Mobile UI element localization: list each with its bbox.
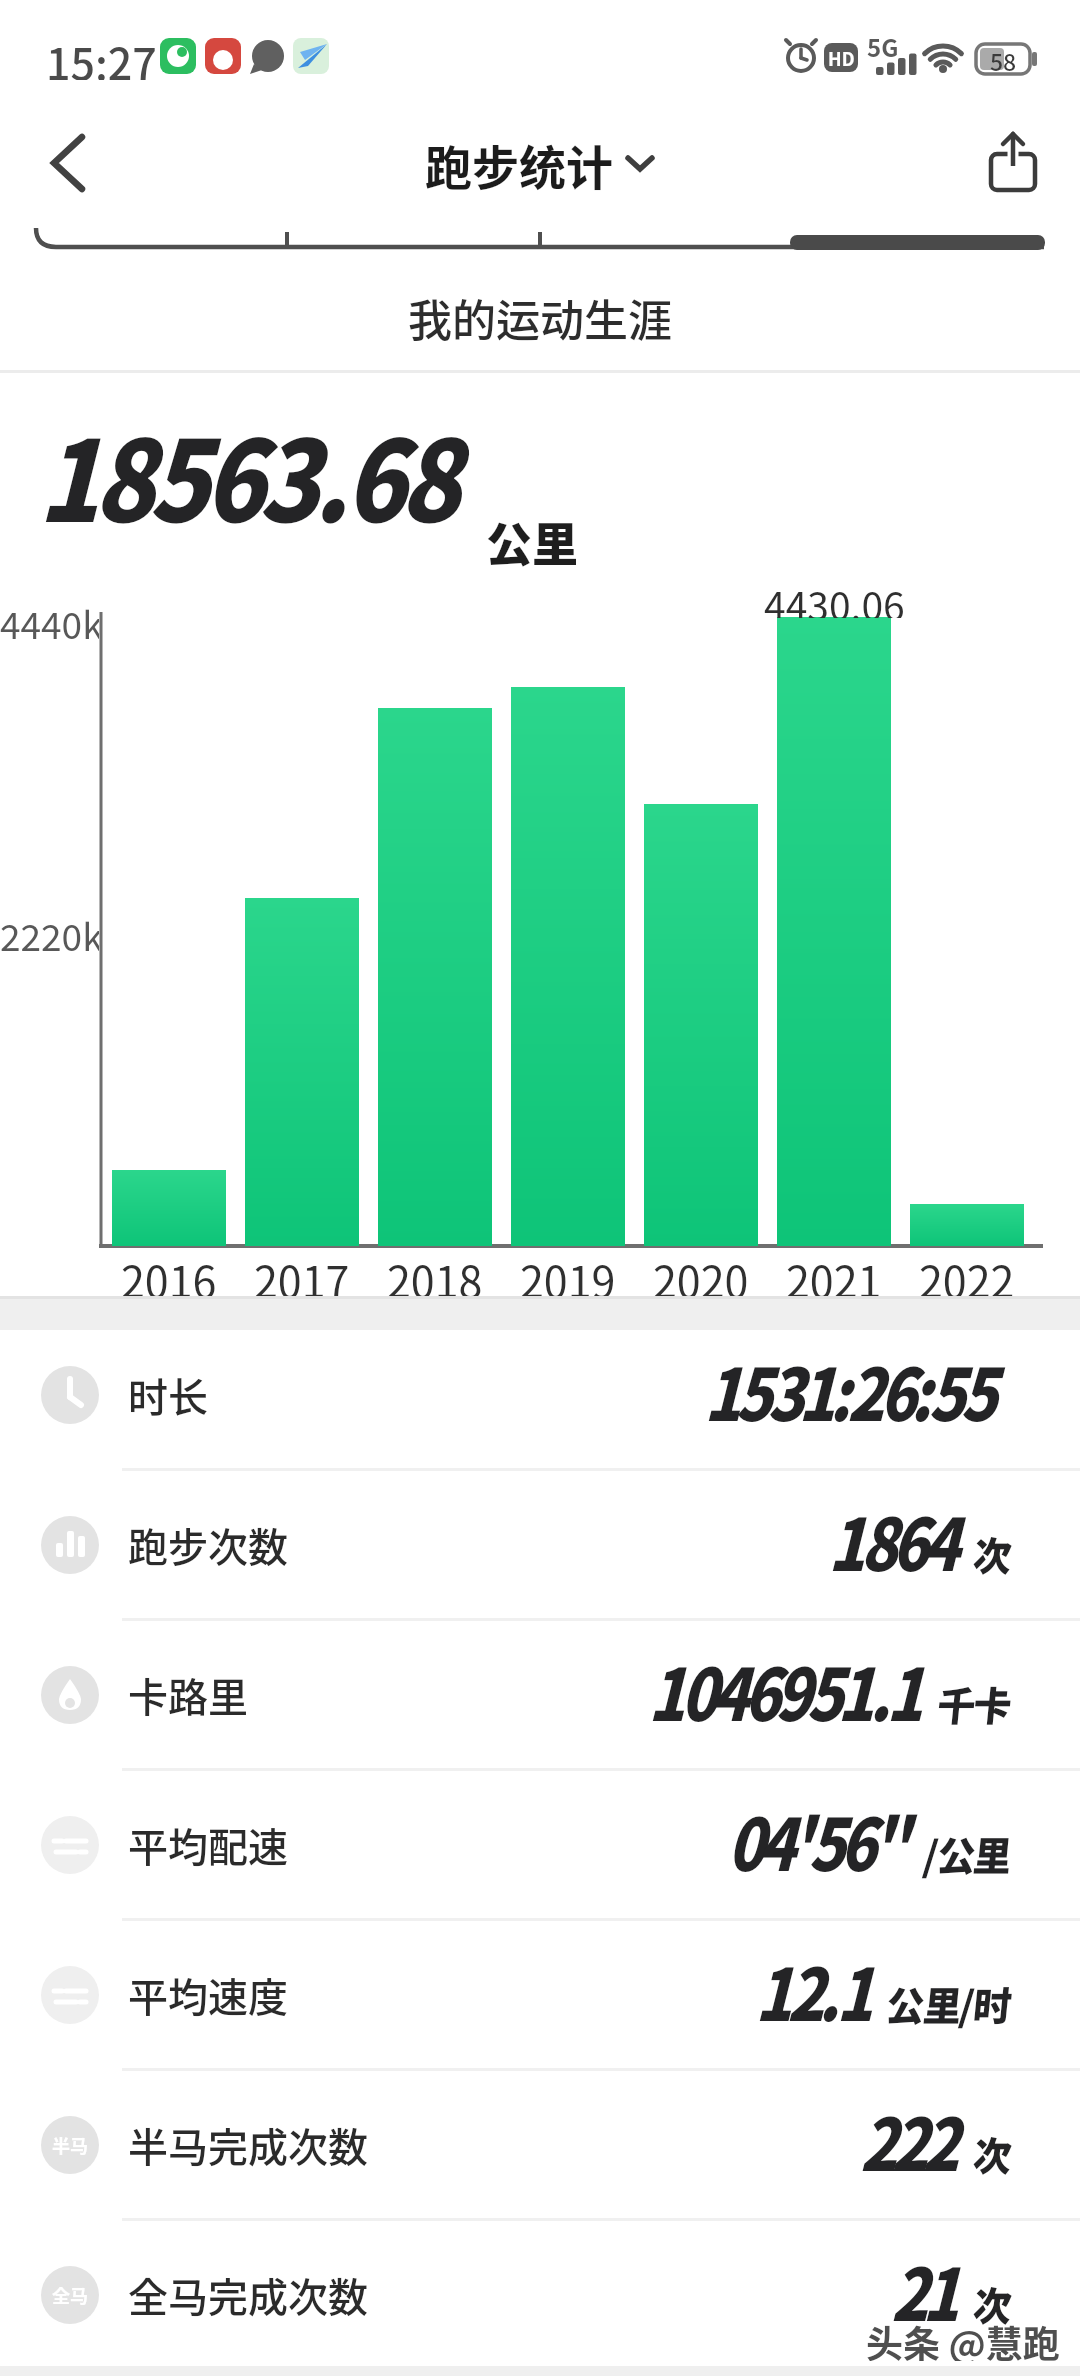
button[interactable] (975, 124, 1051, 200)
button[interactable] (540, 210, 790, 255)
button[interactable] (36, 210, 287, 255)
staticText: 全马 (52, 2282, 88, 2308)
staticText: 公里 (486, 508, 578, 568)
staticText: 2022 (919, 1248, 1015, 1296)
staticText: 4430.06 (764, 576, 905, 618)
button[interactable] (287, 210, 540, 255)
staticText: 4440k (0, 596, 99, 640)
button[interactable]: 跑步次数 (0, 1470, 1080, 1620)
button[interactable] (33, 125, 103, 201)
button[interactable]: 平均速度 (0, 1920, 1080, 2070)
staticText: 5G (867, 29, 899, 64)
button[interactable]: 时长 (0, 1320, 1080, 1470)
button[interactable]: 半马完成次数 (0, 2070, 1080, 2220)
staticText: 2220k (0, 908, 99, 952)
staticText: 头条 @慧跑 (866, 2315, 1060, 2361)
staticText: 2021 (786, 1248, 882, 1296)
button[interactable]: 跑步统计 (425, 130, 655, 198)
staticText: 跑步统计 (425, 130, 613, 198)
staticText: 跑步次数 (128, 1516, 288, 1574)
staticText: 半马完成次数 (128, 2116, 368, 2174)
staticText: 2020 (653, 1248, 749, 1296)
staticText: 平均配速 (128, 1816, 288, 1874)
staticText: 15:27 (46, 30, 157, 80)
staticText: 平均速度 (128, 1966, 288, 2024)
staticText: 时长 (128, 1366, 208, 1424)
button[interactable]: 全马完成次数 (0, 2220, 1080, 2370)
staticText: 2018 (387, 1248, 483, 1296)
button[interactable]: 平均配速 (0, 1770, 1080, 1920)
staticText: 2019 (520, 1248, 616, 1296)
staticText: 我的运动生涯 (408, 286, 672, 346)
staticText: 全马完成次数 (128, 2266, 368, 2324)
staticText: 2017 (254, 1248, 350, 1296)
staticText: 卡路里 (128, 1666, 248, 1724)
staticText: 58 (990, 44, 1017, 74)
button[interactable]: 卡路里 (0, 1620, 1080, 1770)
staticText: HD (828, 45, 855, 71)
staticText: 半马 (52, 2132, 88, 2158)
button[interactable] (790, 210, 1044, 255)
staticText: 2016 (121, 1248, 217, 1296)
